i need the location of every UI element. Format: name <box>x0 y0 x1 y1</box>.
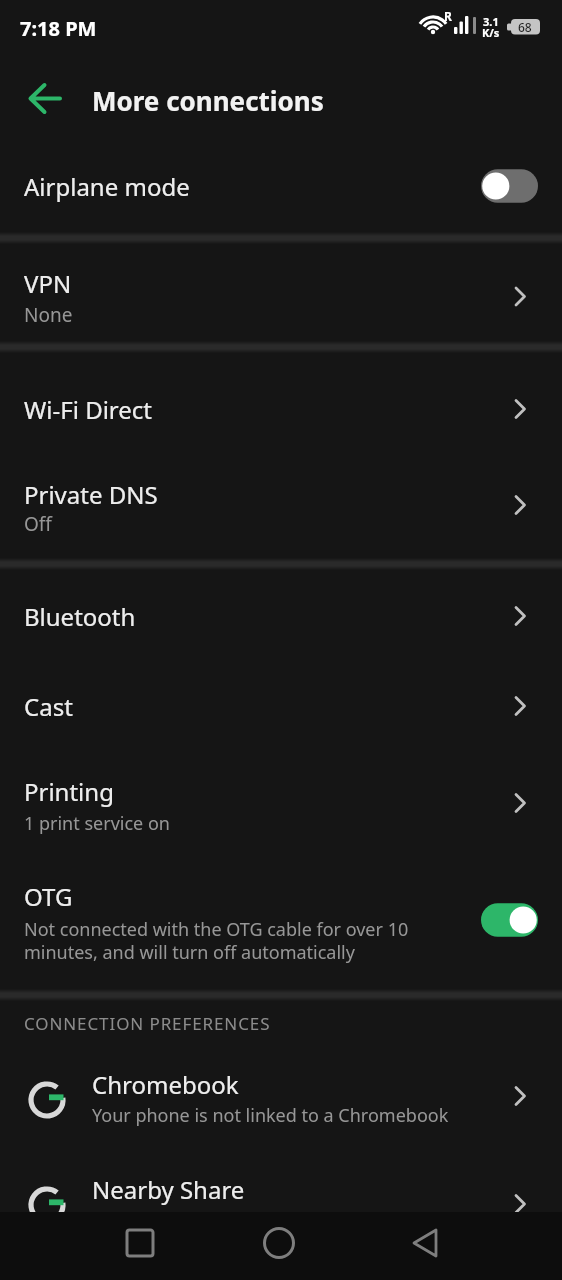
staticText: K/s <box>482 25 500 40</box>
staticText: Wi-Fi Direct <box>24 393 152 426</box>
staticText: VPN <box>24 267 72 300</box>
staticText: 7:18 PM <box>20 15 97 42</box>
staticText: More connections <box>92 83 324 118</box>
staticText: Your phone is not linked to a Chromebook <box>92 1103 449 1128</box>
staticText: Airplane mode <box>24 170 190 203</box>
staticText: 1 print service on <box>24 811 170 836</box>
staticText: Nearby Share <box>92 1173 245 1206</box>
staticText: OTG <box>24 880 73 913</box>
staticText: Bluetooth <box>24 600 136 633</box>
staticText: Not connected with the OTG cable for ove… <box>24 917 409 964</box>
staticText: 3.1 <box>483 14 499 29</box>
staticText: None <box>24 302 73 328</box>
staticText: Off <box>24 511 52 537</box>
staticText: Private DNS <box>24 478 158 511</box>
staticText: R <box>444 8 452 24</box>
staticText: Printing <box>24 775 114 808</box>
staticText: Chromebook <box>92 1068 239 1101</box>
staticText: CONNECTION PREFERENCES <box>24 1012 271 1035</box>
staticText: 68 <box>518 19 532 35</box>
staticText: Cast <box>24 690 73 723</box>
